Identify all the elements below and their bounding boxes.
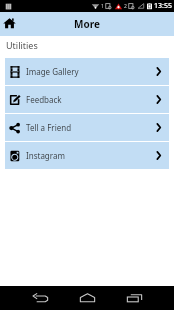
button[interactable]: Image Gallery xyxy=(5,58,169,85)
button[interactable]: Feedback xyxy=(5,86,169,113)
staticText: Image Gallery xyxy=(26,66,156,77)
button[interactable]: Recent apps xyxy=(123,286,145,310)
button[interactable]: Instagram xyxy=(5,142,169,169)
button[interactable]: Home xyxy=(0,12,20,36)
staticText: Feedback xyxy=(26,94,156,105)
staticText: 13:55 xyxy=(154,1,172,11)
staticText: 1 xyxy=(101,3,104,10)
staticText: Tell a Friend xyxy=(26,122,156,133)
staticText: More xyxy=(74,17,100,31)
button[interactable]: Back xyxy=(29,286,51,310)
staticText: 2 xyxy=(124,3,127,10)
button[interactable]: Tell a Friend xyxy=(5,114,169,141)
staticText: Instagram xyxy=(26,150,156,161)
staticText: Utilities xyxy=(6,39,38,51)
button[interactable]: Home xyxy=(76,286,98,310)
